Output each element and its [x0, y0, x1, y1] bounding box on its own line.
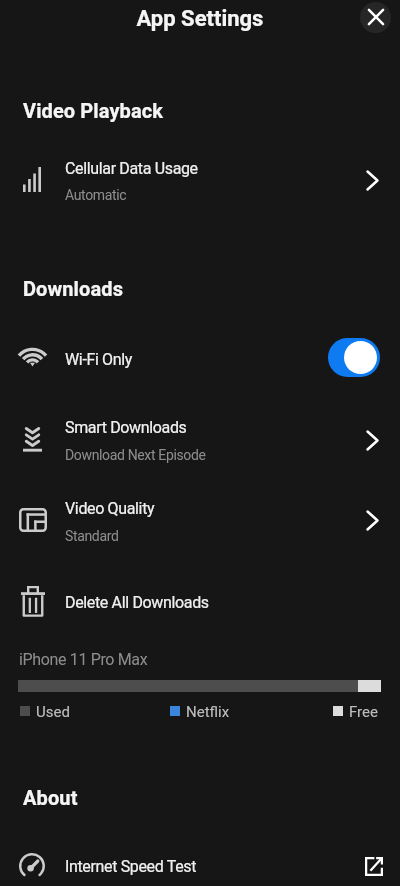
staticText: Delete All Downloads [65, 593, 209, 612]
staticText: App Settings [0, 6, 400, 32]
staticText: Downloads [23, 277, 124, 300]
staticText: Netflix [186, 703, 230, 721]
button[interactable]: Delete All Downloads [0, 562, 400, 638]
staticText: Free [349, 703, 378, 721]
staticText: iPhone 11 Pro Max [19, 650, 148, 669]
button[interactable]: Internet Speed Test [0, 838, 400, 886]
staticText: Internet Speed Test [65, 857, 197, 876]
button[interactable]: Wi-Fi Only toggle [328, 338, 380, 377]
other: Open [366, 430, 379, 451]
staticText: Download Next Episode [65, 447, 206, 463]
staticText: Used [36, 703, 70, 721]
staticText: About [23, 786, 78, 809]
button[interactable]: Video Quality [0, 482, 400, 562]
staticText: Video Quality [65, 499, 155, 518]
button[interactable]: Cellular Data Usage [0, 145, 400, 225]
staticText: Automatic [65, 187, 127, 203]
other: Open [366, 170, 379, 191]
staticText: Standard [65, 528, 119, 544]
staticText: Cellular Data Usage [65, 159, 198, 178]
other: Open [366, 510, 379, 531]
button[interactable]: Wi-Fi Only [0, 322, 400, 402]
button[interactable]: Close [360, 2, 391, 33]
staticText: Video Playback [23, 99, 164, 122]
staticText: Smart Downloads [65, 418, 187, 437]
staticText: Wi-Fi Only [65, 350, 133, 369]
other: Open external link [365, 857, 383, 876]
button[interactable]: Smart Downloads [0, 402, 400, 482]
